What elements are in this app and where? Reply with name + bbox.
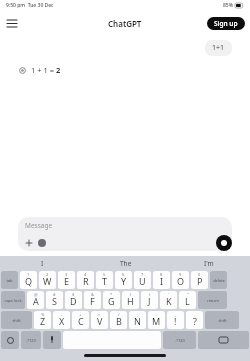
- button[interactable]: Hide keyboard: [198, 331, 249, 349]
- button[interactable]: .?123: [163, 331, 196, 349]
- staticText: :: [156, 312, 158, 317]
- staticText: (: [130, 292, 132, 297]
- staticText: -: [61, 312, 63, 317]
- staticText: #: [53, 292, 56, 297]
- button[interactable]: ': [160, 291, 177, 309]
- staticText: 1: [27, 272, 30, 277]
- staticText: 9: [179, 272, 182, 277]
- button[interactable]: .?123: [21, 331, 41, 349]
- staticText: X: [59, 315, 65, 327]
- staticText: 7: [141, 272, 144, 277]
- button[interactable]: Emoji: [1, 331, 19, 349]
- staticText: 8: [160, 272, 163, 277]
- button[interactable]: $: [65, 291, 82, 309]
- button[interactable]: Message: [18, 217, 232, 251]
- button[interactable]: +: [72, 311, 89, 329]
- button[interactable]: Sign up: [207, 17, 245, 30]
- button[interactable]: I: [0, 256, 84, 270]
- staticText: E: [64, 275, 70, 287]
- staticText: return: [207, 298, 219, 303]
- staticText: caps lock: [4, 298, 22, 303]
- staticText: G: [108, 295, 115, 307]
- button[interactable]: 1: [20, 271, 37, 289]
- button[interactable]: -: [53, 311, 70, 329]
- button[interactable]: Tools: [37, 238, 46, 247]
- staticText: delete: [213, 278, 225, 283]
- staticText: 5: [103, 272, 106, 277]
- button[interactable]: @: [27, 291, 44, 309]
- staticText: Sign up: [214, 19, 238, 28]
- staticText: ,: [175, 312, 177, 317]
- staticText: 4: [84, 272, 87, 277]
- staticText: L: [185, 295, 190, 307]
- staticText: ': [168, 292, 169, 297]
- staticText: ChatGPT: [108, 18, 142, 29]
- button[interactable]: 3: [58, 271, 75, 289]
- staticText: &: [91, 292, 94, 297]
- button[interactable]: The: [84, 256, 167, 270]
- button[interactable]: &: [84, 291, 101, 309]
- staticText: A: [33, 295, 39, 307]
- button[interactable]: :: [148, 311, 165, 329]
- staticText: Q: [25, 275, 33, 287]
- button[interactable]: Add attachment: [24, 238, 33, 247]
- staticText: I: [160, 275, 164, 287]
- button[interactable]: Voice mode: [216, 235, 232, 251]
- button[interactable]: ": [179, 291, 196, 309]
- button[interactable]: 0: [191, 271, 208, 289]
- staticText: V: [97, 315, 103, 327]
- button[interactable]: I'm: [167, 256, 250, 270]
- staticText: P: [197, 275, 203, 287]
- button[interactable]: return: [198, 291, 227, 309]
- button[interactable]: caps lock: [1, 291, 25, 309]
- staticText: W: [43, 275, 52, 287]
- button[interactable]: #: [46, 291, 63, 309]
- staticText: tab: [6, 278, 13, 283]
- staticText: O: [177, 275, 185, 287]
- staticText: S: [52, 295, 57, 307]
- button[interactable]: 8: [153, 271, 170, 289]
- button[interactable]: Dictation: [43, 331, 61, 349]
- staticText: ": [187, 292, 189, 297]
- button[interactable]: ;: [129, 311, 146, 329]
- staticText: .?123: [26, 338, 36, 343]
- button[interactable]: 7: [134, 271, 151, 289]
- button[interactable]: .: [186, 311, 203, 329]
- staticText: I: [41, 259, 44, 268]
- button[interactable]: =: [91, 311, 108, 329]
- staticText: J: [148, 295, 151, 307]
- staticText: ): [149, 292, 151, 297]
- button[interactable]: shift: [1, 311, 32, 329]
- staticText: *: [110, 292, 113, 297]
- button[interactable]: ,: [167, 311, 184, 329]
- button[interactable]: 4: [77, 271, 94, 289]
- button[interactable]: /: [110, 311, 127, 329]
- button[interactable]: 1+1: [205, 40, 232, 56]
- button[interactable]: 5: [96, 271, 113, 289]
- staticText: shift: [218, 318, 227, 323]
- button[interactable]: Menu: [3, 14, 21, 32]
- button[interactable]: ): [141, 291, 158, 309]
- staticText: Y: [121, 275, 127, 287]
- staticText: H: [127, 295, 134, 307]
- staticText: N: [134, 315, 141, 327]
- button[interactable]: 6: [115, 271, 132, 289]
- staticText: @: [34, 292, 38, 297]
- staticText: 6: [122, 272, 125, 277]
- staticText: D: [70, 295, 77, 307]
- staticText: /: [118, 312, 120, 317]
- staticText: 9:50 pm Tue 30 Dec: [6, 2, 54, 9]
- button[interactable]: 9: [172, 271, 189, 289]
- staticText: Z: [40, 315, 46, 327]
- staticText: %: [41, 312, 45, 317]
- staticText: C: [78, 315, 84, 327]
- staticText: .?123: [175, 338, 185, 343]
- button[interactable]: (: [122, 291, 139, 309]
- button[interactable]: delete: [210, 271, 227, 289]
- button[interactable]: 2: [39, 271, 56, 289]
- button[interactable]: *: [103, 291, 120, 309]
- button[interactable]: %: [34, 311, 51, 329]
- button[interactable]: tab: [1, 271, 18, 289]
- button[interactable]: shift: [205, 311, 239, 329]
